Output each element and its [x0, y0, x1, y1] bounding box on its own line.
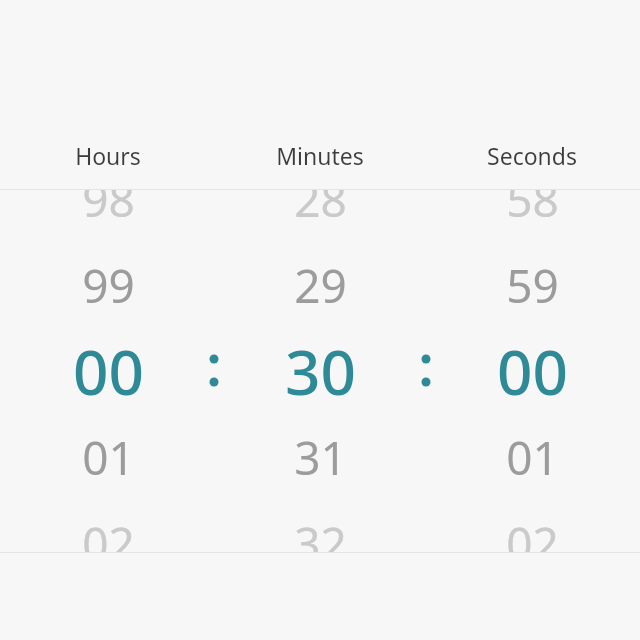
staticText: 30 — [285, 329, 356, 413]
staticText: 02 — [82, 512, 135, 552]
staticText: 31 — [294, 426, 347, 489]
staticText: 02 — [506, 512, 559, 552]
staticText: 29 — [294, 254, 347, 317]
staticText: 58 — [506, 189, 559, 231]
button[interactable]: Seconds — [422, 130, 640, 180]
staticText: 00 — [497, 329, 568, 413]
staticText: 99 — [82, 254, 135, 317]
staticText: Hours — [75, 140, 141, 171]
staticText: Seconds — [487, 140, 577, 171]
staticText: Minutes — [276, 140, 364, 171]
staticText: 32 — [294, 512, 347, 552]
button[interactable]: Hours — [0, 130, 218, 180]
staticText: 59 — [506, 254, 559, 317]
staticText: 00 — [73, 329, 144, 413]
staticText: 28 — [294, 189, 347, 231]
button[interactable]: Minutes — [210, 130, 430, 180]
staticText: 98 — [82, 189, 135, 231]
staticText: 01 — [82, 426, 135, 489]
staticText: 01 — [506, 426, 559, 489]
